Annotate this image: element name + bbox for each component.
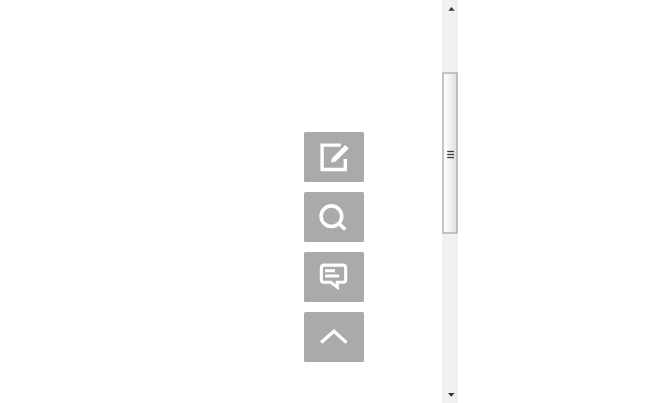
button[interactable]: Messages — [304, 252, 364, 302]
button[interactable]: Compose — [304, 132, 364, 182]
button[interactable]: Search — [304, 192, 364, 242]
button[interactable]: Scrollbar thumb — [443, 73, 457, 233]
button[interactable]: Scroll up — [442, 0, 458, 17]
button[interactable]: Scroll to top — [304, 312, 364, 362]
button[interactable]: Scroll down — [442, 386, 458, 403]
